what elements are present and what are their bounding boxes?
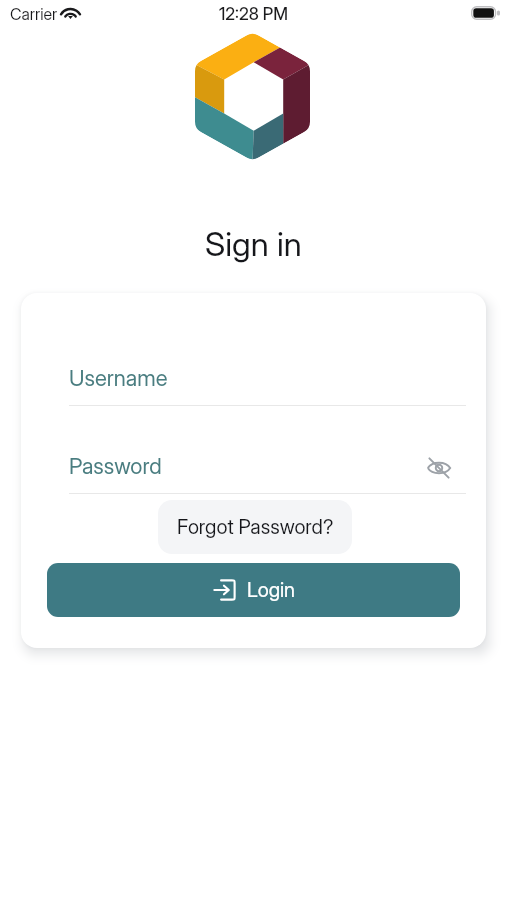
staticText: Username <box>69 365 168 392</box>
staticText: 12:28 PM <box>219 4 289 25</box>
button[interactable]: Forgot Password? <box>158 500 352 554</box>
staticText: Carrier <box>10 4 58 23</box>
button[interactable]: Show password <box>424 453 454 483</box>
button[interactable]: Login <box>47 563 460 617</box>
staticText: Sign in <box>205 224 302 264</box>
staticText: Login <box>247 578 296 602</box>
staticText: Forgot Password? <box>177 515 334 539</box>
staticText: Password <box>69 453 162 480</box>
